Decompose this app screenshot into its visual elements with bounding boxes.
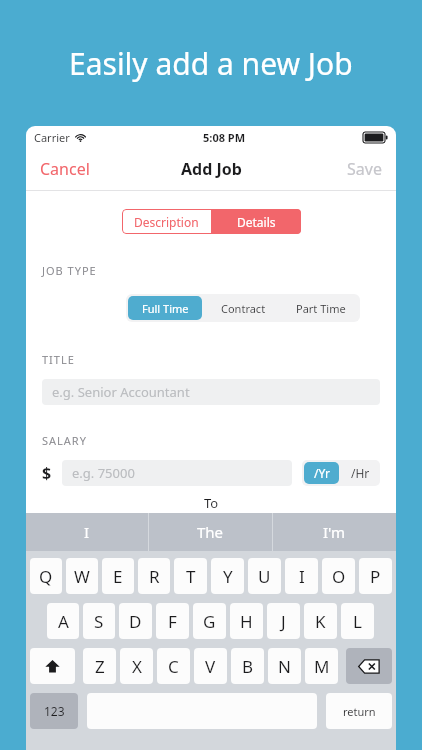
button[interactable]: U	[248, 558, 281, 594]
button[interactable]: X	[120, 648, 153, 684]
staticText: e.g. Senior Accountant	[52, 383, 190, 401]
staticText: C	[168, 655, 179, 678]
button[interactable]: /Yr	[304, 462, 339, 484]
button[interactable]: Return	[326, 693, 392, 729]
button[interactable]: K	[304, 603, 337, 639]
button[interactable]: G	[193, 603, 226, 639]
button[interactable]: Description	[122, 209, 211, 234]
button[interactable]: Full Time	[128, 296, 202, 320]
button[interactable]: e.g. Senior Accountant	[42, 379, 380, 405]
staticText: TITLE	[42, 352, 75, 367]
button[interactable]: N	[268, 648, 301, 684]
staticText: Full Time	[142, 301, 189, 316]
button[interactable]: E	[102, 558, 134, 594]
staticText: Add Job	[181, 158, 242, 180]
button[interactable]: O	[322, 558, 355, 594]
staticText: Q	[39, 565, 53, 588]
button[interactable]: Contract	[206, 296, 280, 320]
button[interactable]: B	[231, 648, 264, 684]
staticText: 123	[44, 703, 65, 719]
button[interactable]: Part Time	[284, 296, 358, 320]
button[interactable]: Save	[333, 148, 396, 190]
button[interactable]: I	[26, 513, 148, 551]
button[interactable]: H	[230, 603, 263, 639]
staticText: X	[132, 655, 142, 678]
staticText: S	[94, 610, 104, 633]
button[interactable]: Cancel	[26, 148, 104, 190]
button[interactable]: D	[119, 603, 152, 639]
staticText: Easily add a new Job	[69, 43, 353, 84]
staticText: M	[314, 655, 330, 678]
staticText: SALARY	[42, 433, 87, 448]
button[interactable]: Numbers	[30, 693, 78, 729]
button[interactable]: The	[149, 513, 272, 551]
button[interactable]: W	[66, 558, 98, 594]
staticText: N	[278, 655, 291, 678]
staticText: A	[58, 610, 69, 633]
button[interactable]: Q	[30, 558, 62, 594]
staticText: 5:08 PM	[203, 130, 246, 145]
button[interactable]: Details	[211, 209, 301, 234]
staticText: H	[240, 610, 253, 633]
button[interactable]: I	[285, 558, 318, 594]
staticText: K	[315, 610, 326, 633]
button[interactable]: Shift	[30, 648, 75, 684]
staticText: D	[129, 610, 142, 633]
staticText: I	[299, 565, 305, 588]
staticText: Contract	[221, 301, 266, 316]
staticText: /Yr	[314, 465, 330, 481]
button[interactable]: P	[359, 558, 392, 594]
staticText: F	[168, 610, 177, 633]
staticText: T	[186, 565, 196, 588]
staticText: Cancel	[40, 158, 90, 180]
staticText: L	[353, 610, 362, 633]
staticText: Save	[347, 158, 382, 180]
staticText: Details	[237, 214, 276, 230]
staticText: B	[242, 655, 254, 678]
staticText: V	[205, 655, 216, 678]
button[interactable]: F	[156, 603, 189, 639]
button[interactable]: R	[138, 558, 170, 594]
staticText: J	[281, 610, 286, 633]
staticText: E	[113, 565, 123, 588]
staticText: e.g. 75000	[72, 464, 135, 482]
staticText: R	[149, 565, 160, 588]
staticText: JOB TYPE	[42, 263, 97, 278]
button[interactable]: e.g. 75000	[62, 460, 292, 486]
staticText: /Hr	[351, 465, 370, 481]
staticText: Description	[134, 214, 199, 230]
staticText: G	[203, 610, 216, 633]
button[interactable]: /Hr	[343, 462, 378, 484]
staticText: I	[84, 522, 90, 542]
button[interactable]: V	[194, 648, 227, 684]
button[interactable]: T	[174, 558, 207, 594]
staticText: O	[332, 565, 346, 588]
staticText: The	[197, 522, 224, 542]
button[interactable]: J	[267, 603, 300, 639]
staticText: return	[343, 704, 376, 719]
button[interactable]: Z	[83, 648, 116, 684]
button[interactable]: A	[47, 603, 79, 639]
button[interactable]: I'm	[273, 513, 396, 551]
button[interactable]: C	[157, 648, 190, 684]
button[interactable]: M	[305, 648, 338, 684]
staticText: P	[370, 565, 381, 588]
button[interactable]: L	[341, 603, 374, 639]
staticText: $	[42, 462, 52, 484]
staticText: Part Time	[296, 301, 346, 316]
staticText: W	[74, 565, 90, 588]
button[interactable]: Y	[211, 558, 244, 594]
staticText: I'm	[323, 522, 346, 542]
staticText: U	[258, 565, 271, 588]
staticText: Y	[223, 565, 233, 588]
staticText: Carrier	[34, 130, 70, 145]
staticText: To	[204, 494, 219, 512]
button[interactable]: Backspace	[346, 648, 392, 684]
staticText: Z	[95, 655, 105, 678]
button[interactable]: S	[83, 603, 115, 639]
